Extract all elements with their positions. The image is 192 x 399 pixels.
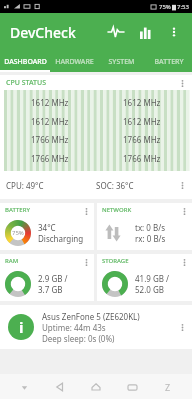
- staticText: 1612 MHz: [31, 116, 69, 127]
- button[interactable]: SYSTEM: [98, 51, 145, 72]
- staticText: i: [19, 317, 24, 337]
- staticText: 41.9 GB /: [135, 273, 170, 284]
- staticText: Deep sleep: 0s (0%): [42, 333, 115, 344]
- staticText: 1766 MHz: [31, 153, 69, 164]
- other: Network traffic: [102, 220, 128, 246]
- button[interactable]: HARDWARE: [51, 51, 98, 72]
- staticText: DevCheck: [10, 23, 76, 42]
- button[interactable]: Screenshot: [156, 375, 180, 399]
- staticText: BATTERY: [5, 206, 30, 214]
- staticText: SOC: 36°C: [96, 180, 134, 191]
- staticText: CPU STATUS: [6, 78, 47, 88]
- staticText: 1766 MHz: [123, 153, 161, 164]
- staticText: 52.0 GB: [135, 284, 164, 295]
- staticText: 75%: [12, 229, 24, 237]
- button[interactable]: Monitor: [103, 19, 129, 45]
- staticText: 2.9 GB /: [38, 273, 68, 284]
- staticText: CPU: 49°C: [6, 180, 44, 191]
- button[interactable]: More options: [79, 204, 93, 218]
- staticText: 1612 MHz: [31, 97, 69, 108]
- button[interactable]: CPU STATUS: [0, 75, 192, 199]
- button[interactable]: DASHBOARD: [0, 51, 51, 72]
- staticText: rx: 0 B/s: [135, 233, 166, 244]
- button[interactable]: More options: [79, 255, 93, 269]
- staticText: HARDWARE: [55, 57, 94, 67]
- staticText: SYSTEM: [108, 57, 135, 67]
- button[interactable]: More options: [177, 255, 191, 269]
- staticText: 1612 MHz: [123, 116, 161, 127]
- staticText: 1766 MHz: [31, 134, 69, 145]
- staticText: tx: 0 B/s: [135, 222, 166, 233]
- staticText: BATTERY: [154, 57, 184, 67]
- staticText: Asus ZenFone 5 (ZE620KL): [42, 311, 140, 322]
- button[interactable]: More options: [177, 204, 191, 218]
- button[interactable]: Hide keyboard: [12, 375, 36, 399]
- button[interactable]: More options: [161, 19, 187, 45]
- staticText: Discharging: [38, 233, 84, 244]
- staticText: Z: [165, 381, 171, 393]
- staticText: 1612 MHz: [123, 97, 161, 108]
- staticText: 7:53: [177, 3, 189, 11]
- staticText: 1766 MHz: [123, 134, 161, 145]
- button[interactable]: Back: [48, 375, 72, 399]
- button[interactable]: More options: [175, 76, 189, 90]
- button[interactable]: Home: [84, 375, 108, 399]
- button[interactable]: RAM: [0, 254, 94, 301]
- staticText: NETWORK: [102, 206, 132, 214]
- button[interactable]: More options: [175, 178, 189, 192]
- button[interactable]: BATTERY: [0, 203, 94, 250]
- staticText: STORAGE: [102, 257, 129, 265]
- button[interactable]: Statistics: [133, 19, 159, 45]
- staticText: 3.7 GB: [38, 284, 63, 295]
- button[interactable]: Recent apps: [120, 375, 144, 399]
- button[interactable]: STORAGE: [97, 254, 192, 301]
- staticText: RAM: [5, 257, 19, 265]
- staticText: Uptime: 44m 43s: [42, 322, 106, 333]
- button[interactable]: BATTERY: [145, 51, 192, 72]
- button[interactable]: More options: [175, 320, 189, 334]
- staticText: DASHBOARD: [4, 57, 47, 67]
- staticText: 34°C: [38, 222, 56, 233]
- staticText: 75%: [159, 3, 171, 11]
- button[interactable]: NETWORK: [97, 203, 192, 250]
- button[interactable]: i: [0, 305, 192, 349]
